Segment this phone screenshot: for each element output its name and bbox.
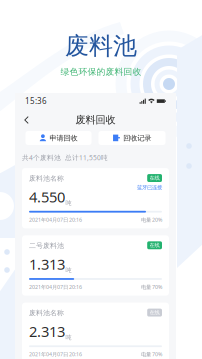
staticText: 吨 [65,199,71,207]
staticText: 2021年04月07日 20:16 [29,283,82,291]
staticText: 废料池 [65,31,137,61]
staticText: 吨 [65,334,71,341]
staticText: 申请回收 [49,133,77,143]
button[interactable]: 申请回收 [25,131,91,145]
staticText: 1.313 [29,254,65,274]
staticText: 电量 20% [141,216,162,223]
staticText: 在线 [150,309,160,316]
staticText: 二号废料池 [29,241,64,250]
staticText: 绿色环保的废料回收 [60,66,141,77]
staticText: 回收记录 [123,133,151,143]
button[interactable]: 回收记录 [98,131,165,145]
staticText: 废料池名称 [29,174,64,183]
staticText: 蓝牙已连接 [137,184,162,191]
staticText: 2.313 [29,321,65,341]
staticText: 废料池名称 [29,309,64,317]
staticText: 废料回收 [75,114,115,126]
staticText: 电量 70% [141,351,162,358]
staticText: 共4个废料池 总计11,550吨 [22,153,108,162]
staticText: 电量 70% [141,283,162,291]
staticText: 2021年04月07日 20:16 [29,351,82,358]
staticText: 在线 [150,175,160,181]
staticText: 在线 [150,242,160,249]
staticText: 4.550 [29,187,65,207]
button[interactable]: Back [20,112,33,128]
staticText: 15:36 [25,96,47,106]
staticText: 2021年04月07日 20:16 [29,216,82,223]
staticText: 吨 [65,266,71,274]
